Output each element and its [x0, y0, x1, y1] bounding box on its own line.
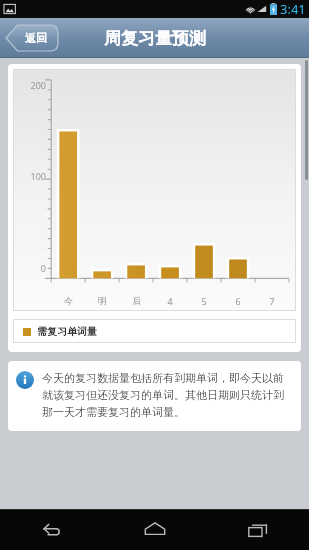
- button[interactable]: 今天的复习数据量包括所有到期单词，即今天以前就该复习但还没复习的单词。其他日期则…: [8, 361, 301, 431]
- button[interactable]: Back: [30, 509, 74, 550]
- staticText: 需复习单词量: [37, 325, 97, 338]
- staticText: 3:41: [280, 0, 306, 18]
- staticText: 返回: [25, 31, 47, 45]
- staticText: 周复习量预测: [104, 28, 206, 49]
- button[interactable]: Home: [133, 509, 177, 550]
- staticText: 今天的复习数据量包括所有到期单词，即今天以前就该复习但还没复习的单词。其他日期则…: [42, 371, 291, 419]
- staticText: 今: [64, 295, 73, 306]
- button[interactable]: Recents: [236, 509, 280, 550]
- staticText: 200: [30, 79, 46, 91]
- staticText: 明: [98, 295, 107, 306]
- staticText: 7: [269, 295, 275, 307]
- staticText: 后: [132, 295, 141, 306]
- staticText: 6: [235, 295, 241, 307]
- button[interactable]: 需复习单词量: [13, 319, 296, 343]
- staticText: 4: [167, 295, 173, 307]
- staticText: 5: [201, 295, 207, 307]
- staticText: 100: [30, 170, 46, 182]
- staticText: 0: [40, 262, 46, 274]
- button[interactable]: 返回: [6, 25, 58, 51]
